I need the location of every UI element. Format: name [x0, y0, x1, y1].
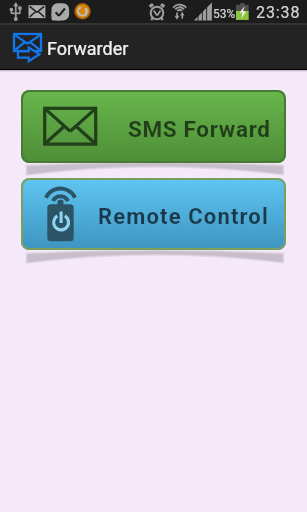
staticText: Remote Control	[98, 204, 269, 230]
staticText: 23:38	[256, 3, 301, 22]
staticText: SMS Forward	[128, 116, 271, 142]
button[interactable]: SMS Forward	[21, 90, 286, 163]
staticText: 53%	[213, 7, 236, 21]
button[interactable]: Remote Control	[21, 178, 286, 250]
button[interactable]: Forwarder app icon	[6, 25, 46, 69]
staticText: Forwarder	[47, 38, 129, 59]
